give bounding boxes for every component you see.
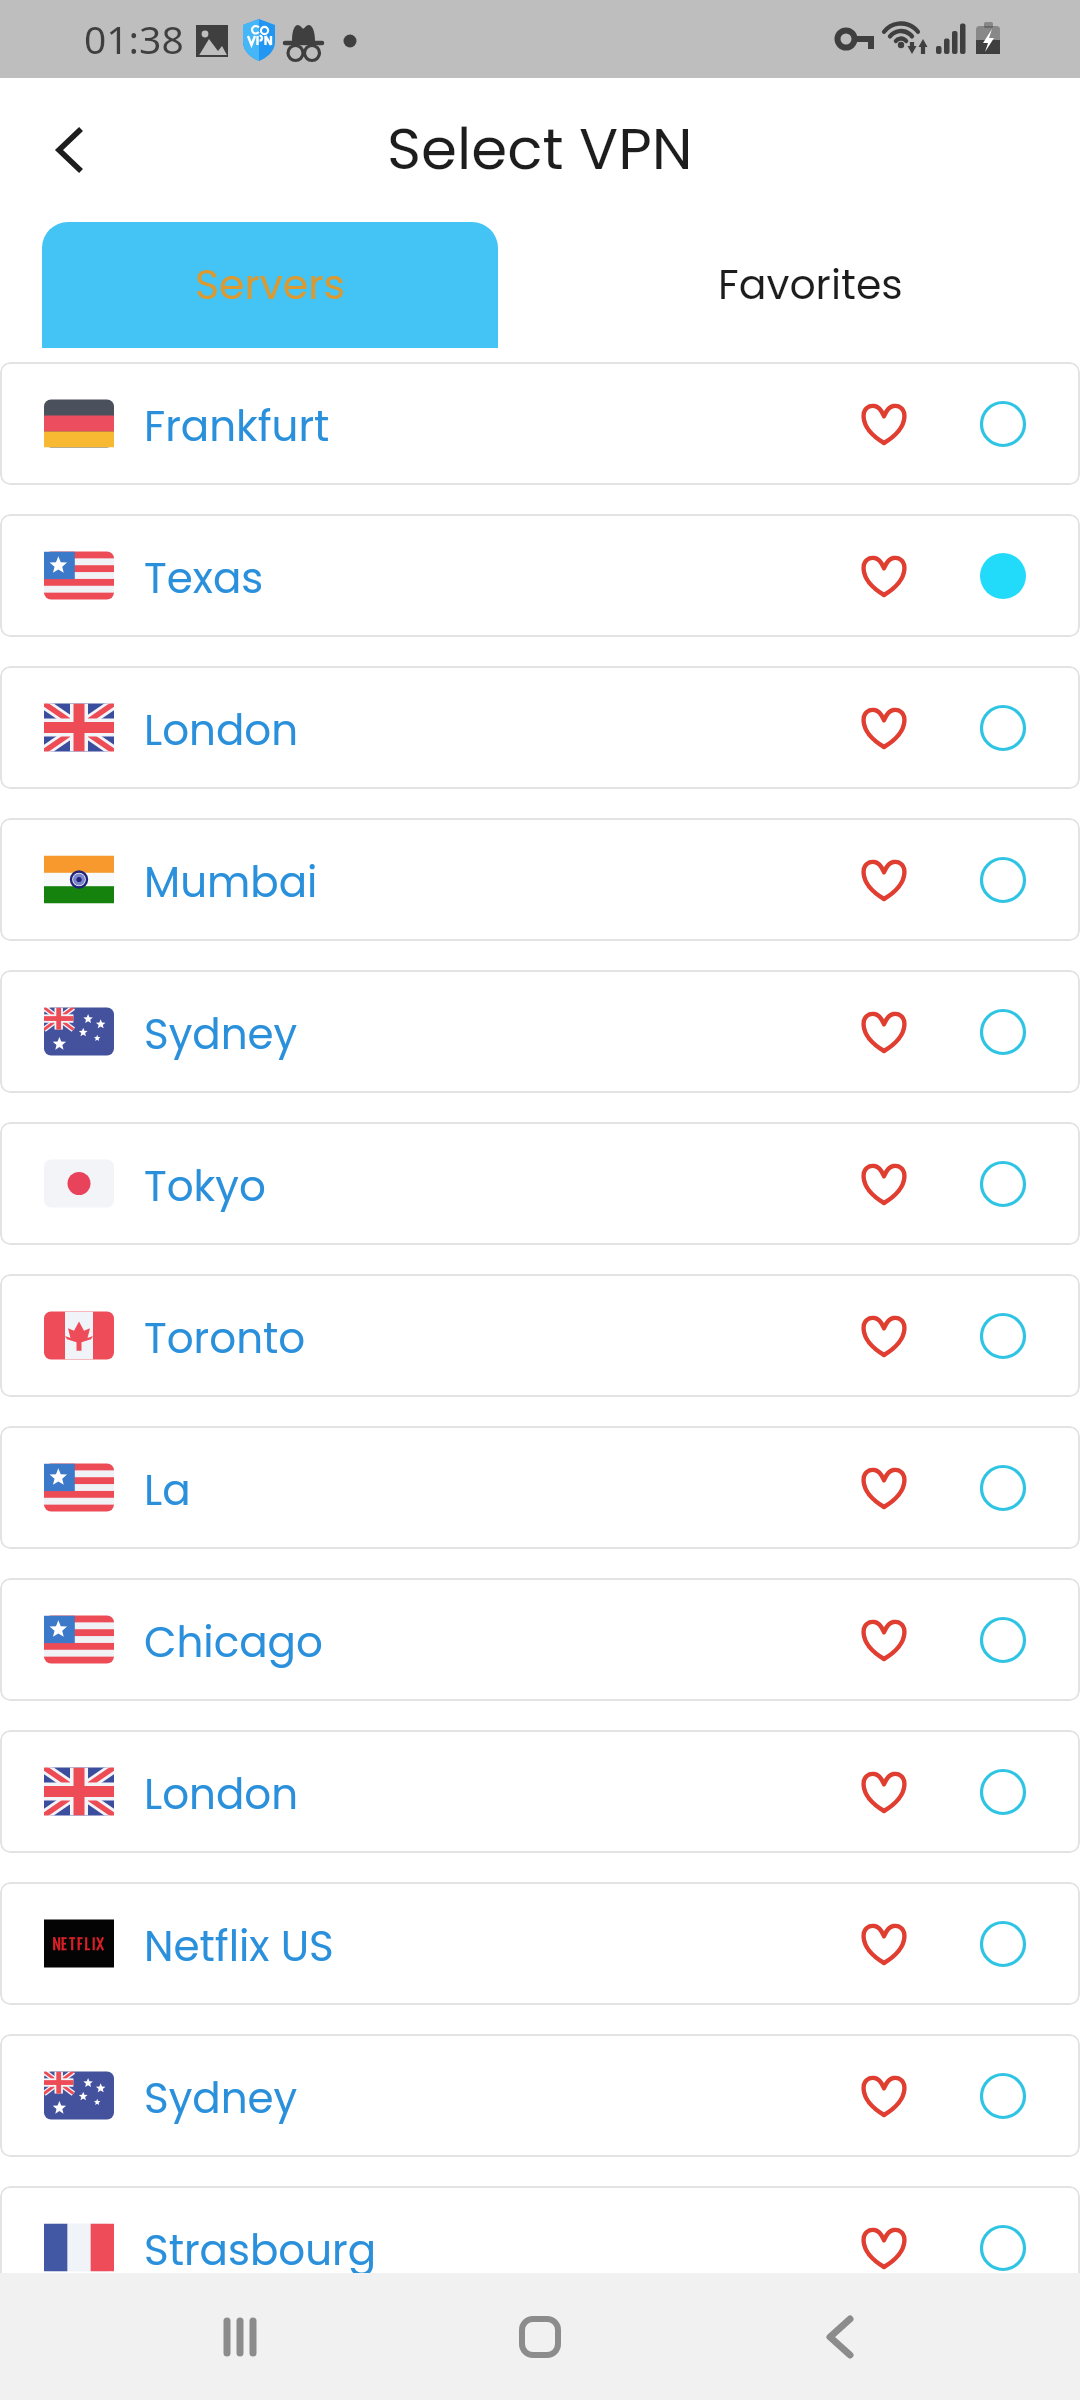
staticText: Netflix US: [144, 1917, 334, 1976]
staticText: Sydney: [144, 1005, 298, 1064]
button[interactable]: Select server: [963, 992, 1043, 1072]
button[interactable]: Select server: [963, 688, 1043, 768]
button[interactable]: Sydney: [0, 970, 1080, 1093]
button[interactable]: Favorite: [844, 1296, 924, 1376]
button[interactable]: Select server: [963, 1752, 1043, 1832]
button[interactable]: Select server: [963, 2056, 1043, 2136]
button[interactable]: La: [0, 1426, 1080, 1549]
staticText: Texas: [144, 549, 264, 608]
staticText: Chicago: [144, 1613, 323, 1672]
button[interactable]: Tokyo: [0, 1122, 1080, 1245]
button[interactable]: Recent apps: [180, 2277, 300, 2397]
button[interactable]: Sydney: [0, 2034, 1080, 2157]
staticText: Sydney: [144, 2069, 298, 2128]
button[interactable]: Select server: [963, 1904, 1043, 1984]
button[interactable]: Favorite: [844, 536, 924, 616]
staticText: La: [144, 1461, 191, 1520]
button[interactable]: Texas: [0, 514, 1080, 637]
button[interactable]: London: [0, 1730, 1080, 1853]
button[interactable]: Select server: [963, 1144, 1043, 1224]
button[interactable]: Chicago: [0, 1578, 1080, 1701]
button[interactable]: Favorites: [540, 222, 1080, 348]
button[interactable]: Select server: [963, 2208, 1043, 2288]
staticText: Tokyo: [144, 1157, 266, 1216]
button[interactable]: Favorite: [844, 2208, 924, 2288]
button[interactable]: Back: [22, 106, 110, 194]
button[interactable]: Back: [780, 2277, 900, 2397]
button[interactable]: Favorite: [844, 2056, 924, 2136]
button[interactable]: London: [0, 666, 1080, 789]
staticText: 01:38: [84, 12, 184, 65]
button[interactable]: Home: [480, 2277, 600, 2397]
staticText: Servers: [195, 256, 345, 313]
staticText: London: [144, 1765, 299, 1824]
button[interactable]: Favorite: [844, 1448, 924, 1528]
staticText: Mumbai: [144, 853, 318, 912]
button[interactable]: Select server: [963, 536, 1043, 616]
button[interactable]: Favorite: [844, 688, 924, 768]
button[interactable]: Select server: [963, 384, 1043, 464]
staticText: Favorites: [718, 256, 903, 313]
button[interactable]: Select server: [963, 1296, 1043, 1376]
button[interactable]: Favorite: [844, 1600, 924, 1680]
staticText: Strasbourg: [144, 2221, 377, 2280]
button[interactable]: Select server: [963, 1600, 1043, 1680]
staticText: London: [144, 701, 299, 760]
button[interactable]: Select server: [963, 840, 1043, 920]
button[interactable]: Favorite: [844, 384, 924, 464]
button[interactable]: Favorite: [844, 1904, 924, 1984]
button[interactable]: Netflix US: [0, 1882, 1080, 2005]
button[interactable]: Mumbai: [0, 818, 1080, 941]
button[interactable]: Frankfurt: [0, 362, 1080, 485]
staticText: Frankfurt: [144, 397, 330, 456]
button[interactable]: Favorite: [844, 840, 924, 920]
button[interactable]: Servers: [42, 222, 498, 348]
button[interactable]: Toronto: [0, 1274, 1080, 1397]
button[interactable]: Favorite: [844, 1144, 924, 1224]
staticText: Toronto: [144, 1309, 306, 1368]
button[interactable]: Favorite: [844, 992, 924, 1072]
button[interactable]: Favorite: [844, 1752, 924, 1832]
staticText: Select VPN: [387, 108, 693, 189]
button[interactable]: Strasbourg: [0, 2186, 1080, 2309]
button[interactable]: Select server: [963, 1448, 1043, 1528]
